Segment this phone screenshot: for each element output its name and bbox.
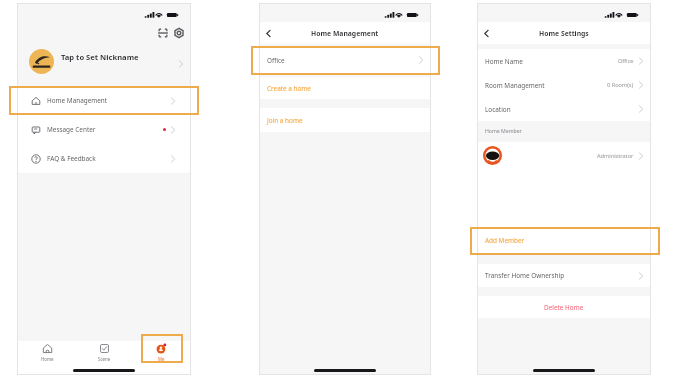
button[interactable]: Transfer Home Ownership <box>478 264 650 287</box>
staticText: Administrator <box>597 152 634 160</box>
button[interactable]: Office <box>260 46 430 74</box>
button[interactable]: Home <box>18 343 76 362</box>
button[interactable]: Delete Home <box>478 296 650 318</box>
button[interactable]: Home Management <box>18 86 190 115</box>
button[interactable]: Back <box>262 27 275 40</box>
staticText: Office <box>618 57 634 65</box>
button[interactable]: Home Name <box>478 49 650 73</box>
button[interactable]: Back <box>480 27 493 40</box>
staticText: Office <box>267 56 285 65</box>
button[interactable]: Message Center <box>18 115 190 144</box>
staticText: Scene <box>98 356 111 362</box>
button[interactable]: Location <box>478 97 650 121</box>
button[interactable]: Room Management <box>478 73 650 97</box>
button[interactable]: Settings <box>173 27 185 39</box>
button[interactable]: Add Member <box>478 227 650 254</box>
staticText: Me <box>158 356 165 362</box>
button[interactable]: Scene <box>76 343 133 362</box>
staticText: 0 Room(s) <box>607 81 634 89</box>
staticText: Create a home <box>267 84 311 93</box>
staticText: Join a home <box>267 116 303 125</box>
staticText: Home Settings <box>539 29 589 38</box>
staticText: Tap to Set Nickname <box>61 52 139 62</box>
button[interactable]: FAQ & Feedback <box>18 144 190 173</box>
staticText: Room Management <box>485 81 545 90</box>
staticText: Home Management <box>311 29 379 38</box>
button[interactable]: Create a home <box>260 77 430 99</box>
staticText: Home <box>41 356 54 362</box>
button[interactable]: Join a home <box>260 108 430 132</box>
staticText: FAQ & Feedback <box>47 154 96 163</box>
staticText: Home Management <box>47 96 108 105</box>
button[interactable]: Scan QR code <box>157 27 169 39</box>
staticText: Home Name <box>485 57 523 66</box>
button[interactable]: Tap to Set Nickname <box>18 42 190 86</box>
staticText: Delete Home <box>544 303 584 312</box>
staticText: Add Member <box>485 236 525 245</box>
staticText: Location <box>485 105 511 114</box>
button[interactable]: Me <box>133 343 190 362</box>
button[interactable]: Administrator <box>478 142 650 169</box>
staticText: Message Center <box>47 125 96 134</box>
staticText: Home Member <box>485 127 522 134</box>
staticText: Transfer Home Ownership <box>485 271 565 280</box>
